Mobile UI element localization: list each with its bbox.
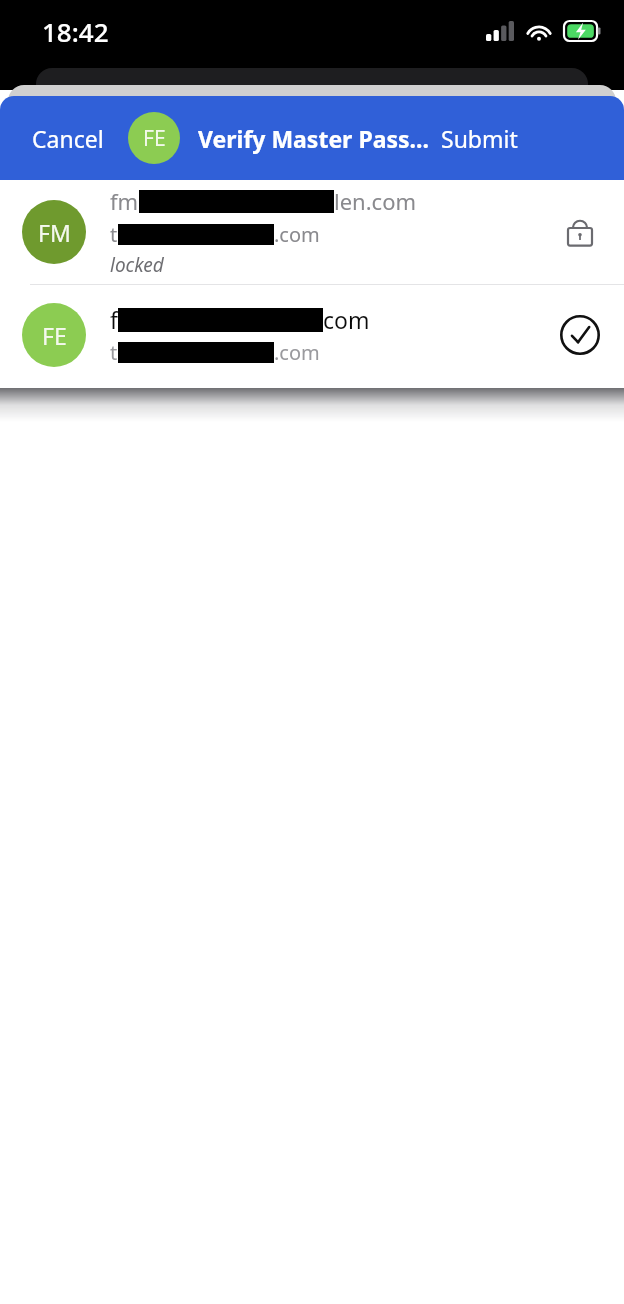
staticText: f: [110, 304, 118, 335]
staticText: FE: [143, 124, 166, 153]
staticText: FM: [38, 217, 71, 248]
staticText: locked: [110, 252, 164, 278]
button[interactable]: Account FE: [128, 112, 180, 164]
button[interactable]: Submit: [441, 111, 530, 166]
staticText: Submit: [441, 123, 518, 154]
button[interactable]: Locked: [548, 200, 612, 264]
staticText: .com: [274, 221, 320, 248]
staticText: len.com: [334, 186, 417, 216]
button[interactable]: FE: [0, 285, 624, 385]
staticText: 18:42: [42, 14, 109, 49]
staticText: t: [110, 221, 118, 248]
staticText: Verify Master Pass...: [198, 123, 429, 154]
staticText: .com: [274, 339, 320, 366]
button[interactable]: Cancel: [0, 111, 112, 166]
button[interactable]: FM: [0, 180, 624, 284]
button[interactable]: Selected: [548, 303, 612, 367]
staticText: Cancel: [32, 123, 104, 154]
staticText: FE: [42, 320, 67, 351]
staticText: t: [110, 339, 118, 366]
staticText: com: [323, 304, 370, 335]
staticText: fm: [110, 186, 139, 216]
